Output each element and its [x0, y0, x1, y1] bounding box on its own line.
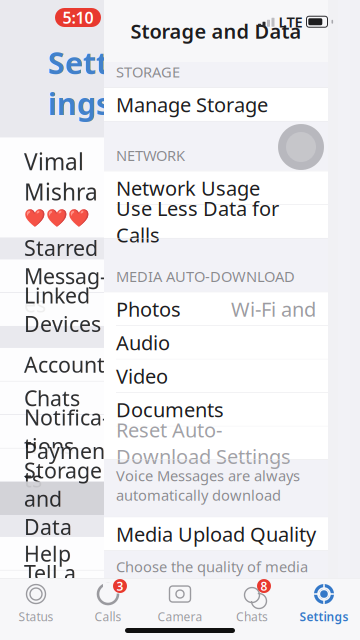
- button[interactable]: Manage Storage: [104, 88, 328, 121]
- staticText: Chats: [24, 384, 80, 412]
- staticText: 3: [116, 578, 123, 594]
- staticText: Documents: [116, 396, 224, 423]
- staticText: Help: [24, 539, 71, 568]
- staticText: NETWORK: [116, 145, 185, 165]
- staticText: 8: [260, 578, 267, 594]
- button[interactable]: Use Less Data for Calls: [104, 205, 328, 238]
- button[interactable]: Photos: [104, 292, 328, 325]
- staticText: Storage and Data: [24, 456, 102, 541]
- button[interactable]: Settings: [288, 578, 360, 627]
- staticText: Starred Messages: [24, 233, 107, 318]
- staticText: Video: [116, 363, 168, 389]
- staticText: Camera: [157, 608, 202, 624]
- staticText: Settings: [299, 608, 348, 624]
- button[interactable]: Reset Auto-Download Settings: [104, 426, 328, 459]
- staticText: Chats: [236, 608, 268, 624]
- staticText: Storage and Data: [130, 18, 301, 44]
- staticText: Choose the quality of media files to be …: [116, 557, 308, 596]
- staticText: Vimal Mishra: [24, 146, 98, 207]
- staticText: Linked Devices: [24, 281, 101, 338]
- staticText: Voice Messages are always automatically …: [116, 466, 300, 505]
- staticText: Calls: [94, 608, 121, 624]
- staticText: Use Less Data for Calls: [116, 195, 279, 248]
- staticText: MEDIA AUTO-DOWNLOAD: [116, 266, 295, 286]
- staticText: ❤️❤️❤️: [24, 209, 90, 228]
- staticText: Wi-Fi and: [231, 296, 316, 322]
- staticText: Reset Auto-Download Settings: [116, 416, 291, 469]
- staticText: Settings: [48, 42, 119, 123]
- staticText: Status: [18, 608, 53, 624]
- staticText: Manage Storage: [116, 91, 268, 118]
- staticText: Media Upload Quality: [116, 521, 316, 547]
- staticText: Photos: [116, 296, 181, 322]
- button[interactable]: Video: [104, 359, 328, 392]
- staticText: STORAGE: [116, 62, 180, 81]
- staticText: Notifications: [24, 403, 109, 460]
- button[interactable]: Status: [0, 578, 72, 627]
- staticText: Tell a Friend: [24, 559, 88, 615]
- staticText: 5:10: [62, 7, 93, 28]
- button[interactable]: Calls: [72, 578, 144, 627]
- button[interactable]: Audio: [104, 326, 328, 359]
- staticText: Network Usage: [116, 175, 260, 201]
- staticText: LTE: [278, 12, 302, 31]
- button[interactable]: Media Upload Quality: [104, 517, 328, 550]
- staticText: Payments: [24, 437, 112, 493]
- button[interactable]: Camera: [144, 578, 216, 627]
- button[interactable]: Chats: [216, 578, 288, 627]
- staticText: Account: [24, 350, 105, 379]
- button[interactable]: Documents: [104, 393, 328, 426]
- button[interactable]: Network Usage: [104, 171, 328, 204]
- staticText: Audio: [116, 329, 170, 356]
